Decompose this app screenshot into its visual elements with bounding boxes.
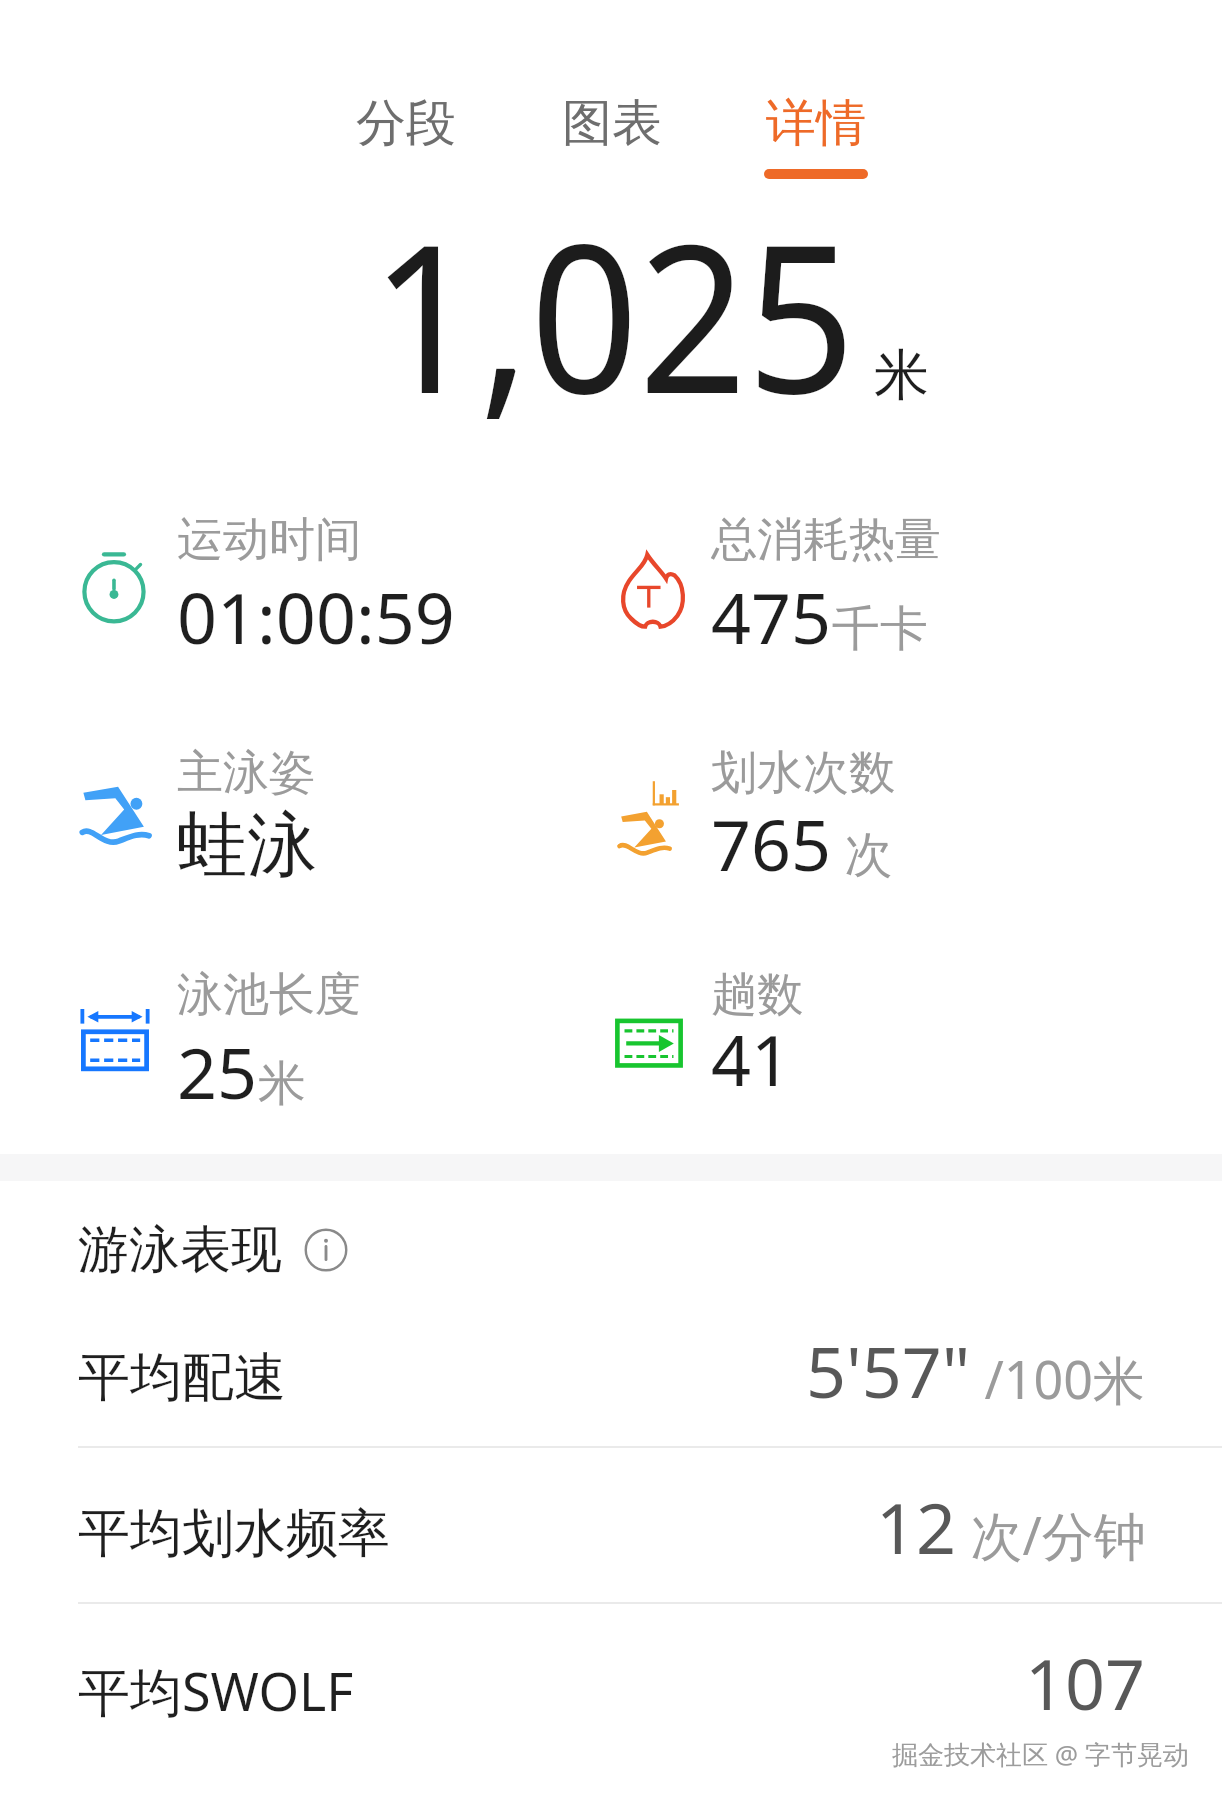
button[interactable]: 分段 bbox=[338, 86, 474, 185]
button[interactable]: 泳池长度 bbox=[81, 966, 361, 1119]
button[interactable]: 主泳姿 bbox=[81, 744, 317, 890]
staticText: 主泳姿 bbox=[177, 744, 315, 802]
staticText: 平均配速 bbox=[78, 1345, 286, 1411]
button[interactable]: 总消耗热量 bbox=[615, 511, 941, 664]
staticText: 平均SWOLF bbox=[78, 1655, 354, 1726]
staticText: 泳池长度 bbox=[177, 966, 361, 1024]
staticText: 分段 bbox=[356, 92, 456, 155]
button[interactable]: 运动时间 bbox=[81, 511, 455, 664]
button[interactable]: 平均划水频率 bbox=[0, 1448, 1222, 1602]
button[interactable]: 详情 bbox=[748, 86, 884, 185]
staticText: 趟数 bbox=[711, 966, 803, 1024]
other: Info bbox=[304, 1228, 348, 1272]
button[interactable]: 平均SWOLF bbox=[0, 1604, 1222, 1758]
staticText: 千卡 bbox=[832, 599, 928, 659]
staticText: 米 bbox=[874, 341, 929, 410]
button[interactable]: 平均配速 bbox=[0, 1292, 1222, 1446]
staticText: 图表 bbox=[562, 92, 662, 155]
staticText: 运动时间 bbox=[177, 511, 361, 569]
button[interactable]: 图表 bbox=[544, 86, 680, 185]
staticText: 5'57" bbox=[806, 1323, 971, 1418]
staticText: 平均划水频率 bbox=[78, 1501, 390, 1567]
staticText: 次/分钟 bbox=[957, 1499, 1146, 1570]
staticText: 1,025 bbox=[371, 174, 855, 453]
staticText: 次 bbox=[832, 820, 893, 886]
staticText: 蛙泳 bbox=[177, 802, 317, 890]
staticText: /100米 bbox=[971, 1343, 1146, 1414]
button[interactable]: 划水次数 bbox=[615, 744, 895, 897]
staticText: 107 bbox=[1025, 1635, 1146, 1730]
staticText: 25 bbox=[177, 1024, 258, 1119]
staticText: 总消耗热量 bbox=[711, 511, 941, 569]
staticText: 划水次数 bbox=[711, 744, 895, 802]
staticText: 01:00:59 bbox=[177, 569, 455, 664]
staticText: 米 bbox=[258, 1054, 306, 1114]
button[interactable]: 趟数 bbox=[615, 966, 803, 1119]
staticText: 765 bbox=[711, 796, 832, 891]
button[interactable]: 游泳表现 bbox=[78, 1218, 348, 1282]
staticText: 详情 bbox=[766, 92, 866, 155]
staticText: 12 bbox=[876, 1479, 957, 1574]
staticText: 41 bbox=[711, 1011, 792, 1106]
staticText: 475 bbox=[711, 569, 832, 664]
staticText: 掘金技术社区 @ 字节晃动 bbox=[892, 1736, 1189, 1772]
staticText: 游泳表现 bbox=[78, 1218, 282, 1282]
